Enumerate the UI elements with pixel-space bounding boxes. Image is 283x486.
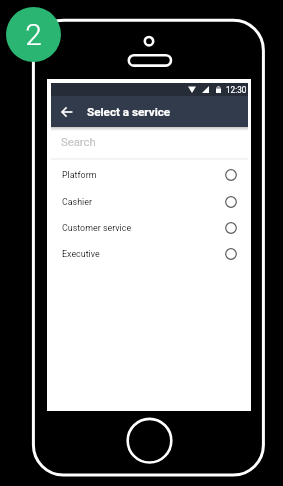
staticText: Executive [62,249,100,259]
staticText: Cashier [62,197,92,207]
button[interactable]: Platform [51,161,248,188]
button[interactable]: Cashier [51,188,248,215]
staticText: Platform [62,170,97,180]
staticText: 2 [25,17,42,52]
button[interactable]: 2 [6,7,61,62]
staticText: Customer service [62,223,132,233]
staticText: Search [61,136,96,149]
staticText: Select a service [87,105,171,119]
button[interactable]: Search [51,127,248,158]
button[interactable]: Executive [51,241,248,267]
staticText: 12:30 [226,85,247,95]
button[interactable]: Back [59,104,75,120]
button[interactable]: Customer service [51,215,248,241]
